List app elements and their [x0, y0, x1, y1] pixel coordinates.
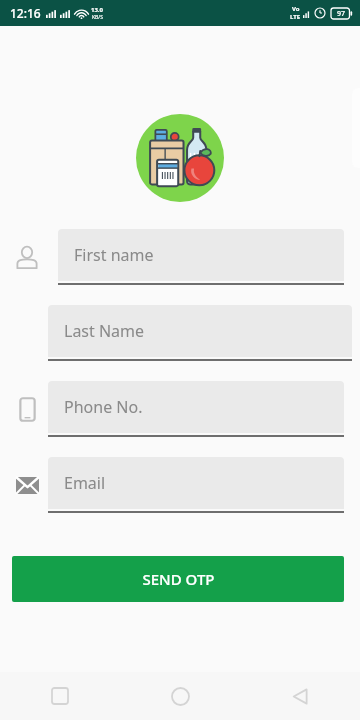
- button[interactable]: Back: [240, 672, 360, 720]
- button[interactable]: Phone No.: [48, 381, 344, 437]
- staticText: SEND OTP: [142, 569, 215, 589]
- button[interactable]: SEND OTP: [12, 556, 344, 602]
- button[interactable]: Home: [120, 672, 240, 720]
- staticText: First name: [74, 244, 154, 266]
- button[interactable]: Email: [48, 457, 344, 513]
- button[interactable]: First name: [58, 229, 344, 285]
- staticText: Last Name: [64, 320, 145, 342]
- button[interactable]: Last Name: [48, 305, 352, 361]
- staticText: KB/S: [92, 14, 103, 21]
- staticText: LTE: [290, 13, 301, 21]
- staticText: 12:16: [10, 5, 41, 21]
- staticText: Email: [64, 472, 106, 494]
- button[interactable]: Phone: [13, 395, 41, 423]
- staticText: 13.0: [91, 6, 103, 14]
- staticText: Vo: [292, 5, 300, 13]
- staticText: Phone No.: [64, 396, 143, 418]
- button[interactable]: Recent apps: [0, 672, 120, 720]
- staticText: 97: [337, 9, 346, 19]
- button[interactable]: Email: [13, 471, 41, 499]
- button[interactable]: Person: [13, 243, 41, 271]
